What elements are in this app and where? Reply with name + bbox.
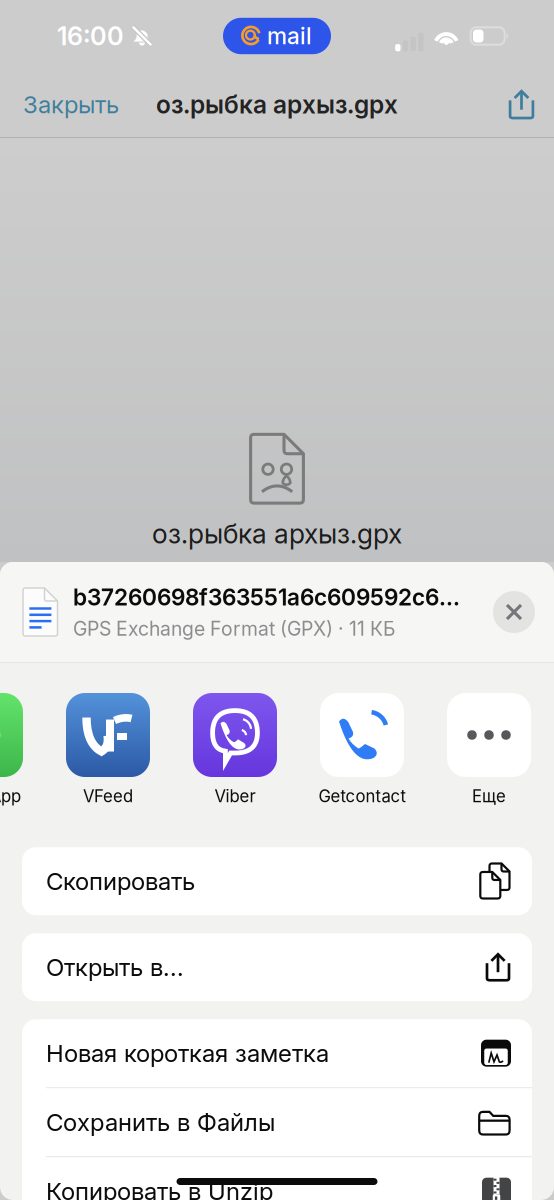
button[interactable]: Viber [193, 693, 277, 806]
staticText: Getcontact [318, 786, 405, 806]
button[interactable]: Еще [447, 693, 531, 806]
staticText: Сохранить в Файлы [46, 1108, 275, 1137]
staticText: оз.рыбка архыз.gpx [156, 90, 398, 119]
staticText: Закрыть [23, 90, 119, 119]
staticText: оз.рыбка архыз.gpx [152, 518, 402, 550]
button[interactable]: Close [486, 584, 542, 640]
staticText: Новая короткая заметка [46, 1039, 329, 1068]
button[interactable]: Новая короткая заметка [22, 1019, 532, 1087]
button[interactable]: Share [489, 79, 554, 129]
staticText: 16:00 [57, 21, 124, 51]
button[interactable]: Копировать в Unzip [22, 1157, 532, 1200]
button[interactable]: Открыть в... [22, 933, 532, 1001]
staticText: Копировать в Unzip [46, 1177, 273, 1200]
button[interactable]: Getcontact [320, 693, 404, 806]
staticText: WhatsApp [0, 786, 21, 806]
button[interactable]: Скопировать [22, 847, 532, 915]
button[interactable]: Закрыть [0, 77, 142, 132]
staticText: mail [267, 22, 312, 50]
staticText: Viber [214, 786, 255, 806]
staticText: b37260698f363551a6c609592c6... [73, 584, 460, 611]
button[interactable]: WhatsApp [0, 693, 23, 806]
staticText: Скопировать [46, 867, 195, 896]
staticText: Открыть в... [46, 953, 184, 982]
staticText: GPS Exchange Format (GPX) · 11 КБ [73, 617, 395, 640]
button[interactable]: VFeed [66, 693, 150, 806]
staticText: VFeed [83, 786, 133, 806]
button[interactable]: Сохранить в Файлы [22, 1088, 532, 1156]
staticText: Еще [472, 786, 506, 806]
